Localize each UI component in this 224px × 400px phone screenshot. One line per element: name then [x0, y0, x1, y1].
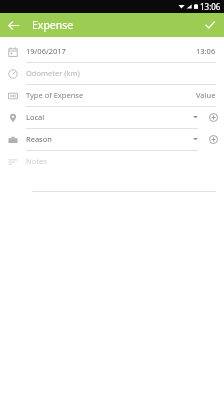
staticText: Local: [26, 112, 45, 122]
button[interactable]: Location: [0, 107, 202, 129]
button[interactable]: Save: [201, 16, 219, 34]
staticText: 13:06: [196, 46, 216, 56]
button[interactable]: Type of expense and value: [0, 85, 224, 107]
button[interactable]: Back: [4, 16, 22, 34]
staticText: 13:06: [200, 1, 221, 12]
button[interactable]: Date and time: [0, 41, 224, 63]
button[interactable]: Reason: [0, 129, 202, 151]
staticText: Expense: [32, 18, 74, 32]
staticText: Value: [196, 90, 216, 100]
button[interactable]: Odometer: [0, 63, 224, 85]
button[interactable]: Add Location: [202, 107, 224, 129]
staticText: Notes: [26, 156, 47, 166]
button[interactable]: Add Reason: [202, 129, 224, 151]
staticText: Reason: [26, 134, 52, 144]
button[interactable]: Notes: [0, 151, 224, 173]
staticText: Odometer (km): [26, 68, 80, 78]
staticText: 19/06/2017: [26, 46, 66, 56]
staticText: Type of Expense: [26, 90, 84, 100]
